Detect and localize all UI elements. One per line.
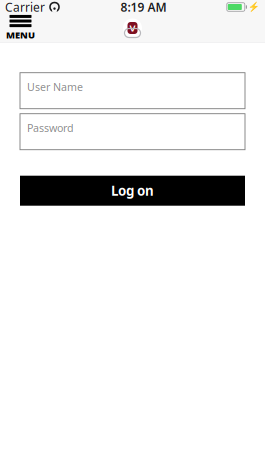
staticText: 8:19 AM [120,0,166,15]
staticText: Password [27,121,74,135]
staticText: Carrier [5,0,45,15]
staticText: Log on [111,182,154,199]
button[interactable]: Log on [20,176,245,206]
staticText: V [129,22,135,34]
staticText: ⚡ [248,2,260,12]
button[interactable]: Menu [0,13,41,43]
staticText: MENU [6,29,35,41]
staticText: User Name [27,80,83,94]
